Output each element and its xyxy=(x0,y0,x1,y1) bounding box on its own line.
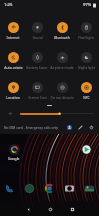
button[interactable]: App xyxy=(76,144,96,155)
button[interactable]: App xyxy=(44,183,55,194)
button[interactable]: App xyxy=(64,183,75,194)
staticText: Do not disturb xyxy=(50,95,74,100)
button[interactable]: Location xyxy=(1,82,25,100)
button[interactable]: Auto-rotate xyxy=(1,52,25,70)
button[interactable]: User xyxy=(65,123,73,131)
button[interactable]: Screen Cast xyxy=(25,82,49,100)
button[interactable]: Back xyxy=(22,203,34,215)
staticText: NFC xyxy=(83,95,90,100)
staticText: Location xyxy=(6,95,20,100)
staticText: No SIM card - Emergency calls only xyxy=(4,125,58,129)
button[interactable]: Sound xyxy=(25,22,49,40)
button[interactable]: Power xyxy=(87,123,95,131)
staticText: Bluetooth xyxy=(54,35,70,40)
staticText: Sound xyxy=(32,35,43,40)
other: Brightness xyxy=(7,111,14,116)
button[interactable]: App xyxy=(24,183,35,194)
staticText: Auto-rotate xyxy=(4,65,23,70)
staticText: 1:25 xyxy=(4,2,13,8)
staticText: Night light xyxy=(78,65,95,70)
button[interactable]: Airplane mode xyxy=(50,52,74,70)
button[interactable]: Do not disturb xyxy=(50,82,74,100)
button[interactable] xyxy=(20,112,94,115)
button[interactable]: Internet xyxy=(1,22,25,40)
button[interactable]: Bluetooth xyxy=(50,22,74,40)
button[interactable]: App xyxy=(4,183,15,194)
staticText: Internet xyxy=(6,35,20,40)
staticText: Battery Saver xyxy=(26,65,48,70)
button[interactable]: Battery Saver xyxy=(25,52,49,70)
staticText: Airplane mode xyxy=(50,65,74,70)
staticText: Flashlight xyxy=(78,35,94,40)
button[interactable]: Night light xyxy=(74,52,98,70)
button[interactable]: Home xyxy=(44,203,56,215)
button[interactable]: App xyxy=(84,183,95,194)
button[interactable]: Flashlight xyxy=(74,22,98,40)
staticText: 97% xyxy=(83,2,92,8)
staticText: Screen Cast xyxy=(28,95,47,100)
staticText: Google xyxy=(8,156,20,161)
button[interactable]: App xyxy=(4,144,24,161)
button[interactable]: Recents xyxy=(66,203,78,215)
button[interactable]: Edit tiles xyxy=(76,123,84,131)
button[interactable]: NFC xyxy=(74,82,98,100)
